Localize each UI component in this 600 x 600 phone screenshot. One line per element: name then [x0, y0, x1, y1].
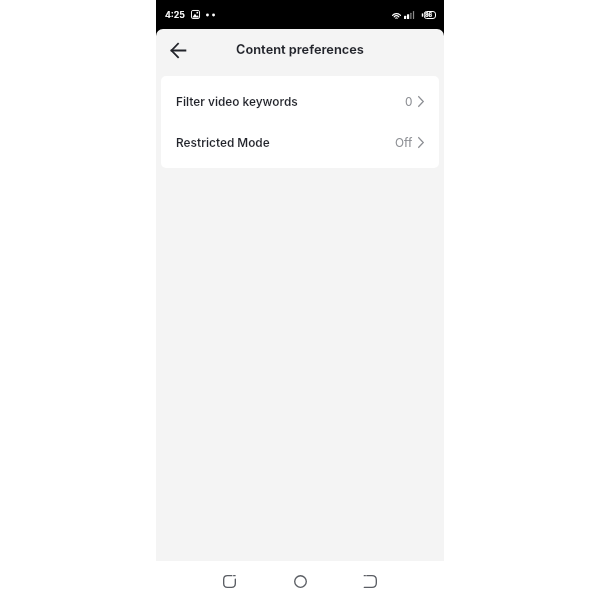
button[interactable]: Home	[287, 568, 313, 594]
button[interactable]: Back	[160, 32, 196, 68]
button[interactable]: Back	[357, 568, 383, 594]
staticText: Filter video keywords	[176, 95, 298, 109]
staticText: Off	[395, 136, 413, 150]
button[interactable]: Recent apps	[216, 568, 242, 594]
button[interactable]: Filter video keywords	[161, 81, 439, 122]
staticText: 86	[425, 12, 433, 19]
staticText: Restricted Mode	[176, 136, 270, 150]
button[interactable]: Restricted Mode	[161, 122, 439, 163]
staticText: Content preferences	[236, 42, 364, 57]
staticText: 4:25	[165, 9, 185, 20]
staticText: 0	[405, 95, 413, 109]
